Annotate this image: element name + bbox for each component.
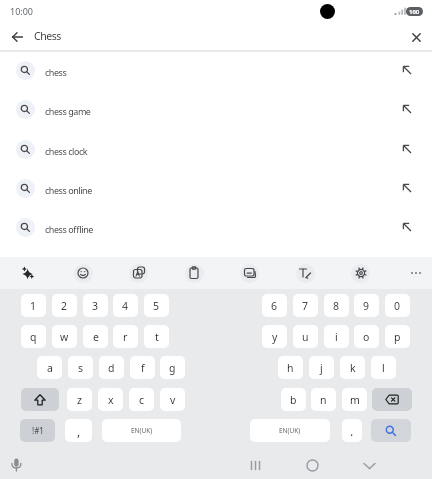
staticText: c — [139, 393, 145, 407]
staticText: 2 — [61, 299, 68, 313]
staticText: z — [77, 393, 82, 407]
button[interactable]: g — [160, 356, 185, 379]
staticText: chess clock — [45, 145, 88, 157]
button[interactable]: z — [67, 388, 92, 411]
staticText: 100 — [409, 8, 420, 16]
staticText: EN(UK) — [279, 426, 301, 435]
staticText: k — [350, 361, 356, 375]
button[interactable]: chess online — [0, 169, 432, 208]
button[interactable]: chess game — [0, 90, 432, 129]
button[interactable] — [21, 388, 59, 411]
button[interactable]: h — [278, 356, 303, 379]
button[interactable]: f — [130, 356, 155, 379]
button[interactable]: r — [113, 325, 138, 348]
button[interactable]: chess offline — [0, 208, 432, 247]
button[interactable]: 9 — [354, 294, 379, 317]
staticText: 8 — [333, 299, 340, 313]
button[interactable]: k — [340, 356, 365, 379]
staticText: m — [350, 393, 360, 407]
button[interactable]: u — [293, 325, 318, 348]
staticText: j — [320, 361, 323, 375]
staticText: , — [77, 423, 81, 439]
button[interactable]: chess — [0, 51, 432, 90]
button[interactable]: y — [262, 325, 287, 348]
button[interactable]: 5 — [144, 294, 169, 317]
staticText: a — [47, 361, 53, 375]
button[interactable]: 0 — [385, 294, 410, 317]
button[interactable]: l — [371, 356, 396, 379]
button[interactable]: a — [37, 356, 62, 379]
button[interactable]: b — [281, 388, 306, 411]
button[interactable]: , — [65, 419, 92, 442]
button[interactable]: . — [342, 419, 362, 442]
button[interactable]: s — [68, 356, 93, 379]
button[interactable] — [245, 455, 266, 476]
staticText: s — [78, 361, 84, 375]
button[interactable] — [18, 264, 37, 283]
button[interactable]: n — [311, 388, 336, 411]
button[interactable]: 3 — [83, 294, 108, 317]
staticText: chess game — [45, 105, 91, 117]
button[interactable]: 6 — [262, 294, 287, 317]
button[interactable]: 7 — [293, 294, 318, 317]
button[interactable] — [371, 419, 411, 442]
button[interactable] — [185, 264, 204, 283]
staticText: chess — [45, 66, 67, 78]
staticText: 6 — [271, 299, 278, 313]
button[interactable]: i — [324, 325, 349, 348]
staticText: chess offline — [45, 223, 93, 235]
button[interactable]: 1 — [21, 294, 46, 317]
staticText: h — [287, 361, 294, 375]
button[interactable] — [74, 264, 93, 283]
staticText: p — [394, 330, 401, 344]
button[interactable]: EN(UK) — [250, 419, 330, 442]
button[interactable]: 2 — [52, 294, 77, 317]
button[interactable]: 8 — [324, 294, 349, 317]
button[interactable]: !#1 — [20, 419, 55, 442]
button[interactable]: o — [354, 325, 379, 348]
button[interactable]: q — [21, 325, 46, 348]
staticText: f — [141, 361, 145, 375]
staticText: x — [108, 393, 114, 407]
button[interactable]: e — [83, 325, 108, 348]
staticText: . — [350, 423, 354, 439]
button[interactable] — [296, 264, 315, 283]
staticText: 0 — [394, 299, 401, 313]
button[interactable]: v — [160, 388, 185, 411]
staticText: 3 — [92, 299, 99, 313]
staticText: 9 — [363, 299, 370, 313]
staticText: w — [60, 330, 69, 344]
staticText: r — [123, 330, 128, 344]
staticText: 5 — [153, 299, 160, 313]
staticText: l — [382, 361, 385, 375]
button[interactable]: chess clock — [0, 130, 432, 169]
button[interactable] — [372, 388, 412, 411]
button[interactable]: 4 — [113, 294, 138, 317]
button[interactable]: j — [309, 356, 334, 379]
button[interactable] — [6, 26, 28, 48]
staticText: Chess — [34, 29, 61, 43]
staticText: e — [93, 330, 99, 344]
staticText: i — [335, 330, 338, 344]
button[interactable] — [359, 455, 380, 476]
button[interactable]: EN(UK) — [102, 419, 181, 442]
staticText: n — [320, 393, 327, 407]
button[interactable] — [302, 455, 323, 476]
staticText: u — [302, 330, 309, 344]
staticText: 7 — [302, 299, 309, 313]
button[interactable]: t — [144, 325, 169, 348]
button[interactable]: w — [52, 325, 77, 348]
staticText: !#1 — [32, 425, 44, 436]
button[interactable]: m — [342, 388, 367, 411]
button[interactable] — [351, 264, 370, 283]
button[interactable]: c — [129, 388, 154, 411]
button[interactable] — [240, 264, 259, 283]
button[interactable]: p — [385, 325, 410, 348]
staticText: 4 — [122, 299, 129, 313]
button[interactable]: d — [99, 356, 124, 379]
button[interactable] — [407, 264, 426, 283]
button[interactable] — [129, 264, 148, 283]
button[interactable]: x — [98, 388, 123, 411]
staticText: o — [363, 330, 370, 344]
button[interactable] — [405, 26, 427, 48]
